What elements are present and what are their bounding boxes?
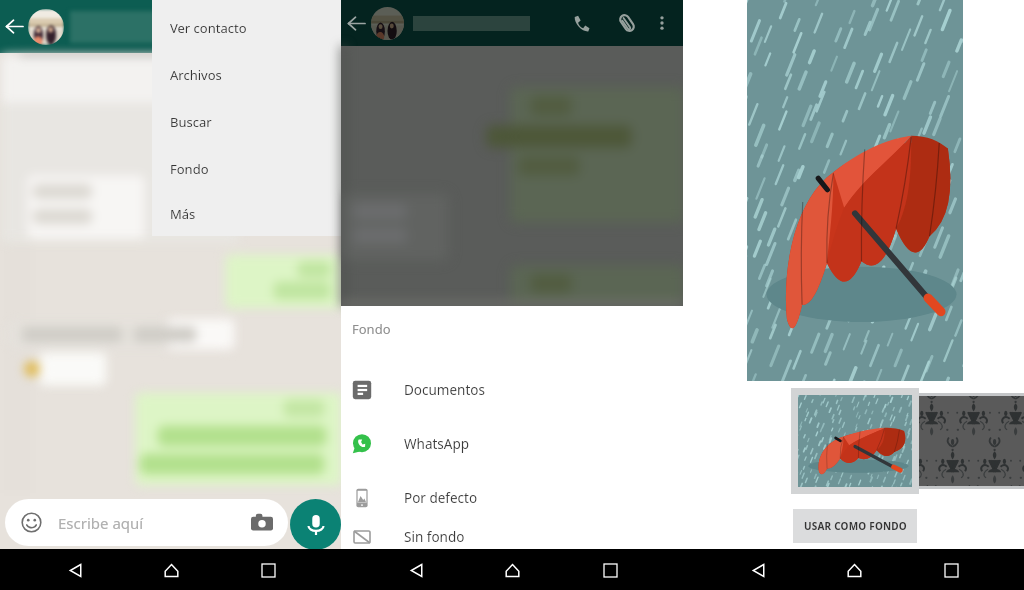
staticText: USAR COMO FONDO bbox=[804, 519, 907, 533]
button[interactable]: Fondo bbox=[152, 145, 341, 192]
button[interactable]: Back bbox=[400, 554, 432, 586]
button[interactable]: Wallpaper preview bbox=[747, 0, 963, 381]
button[interactable]: Más bbox=[152, 192, 341, 236]
staticText: Archivos bbox=[170, 66, 222, 84]
button[interactable]: Back bbox=[0, 0, 28, 53]
button[interactable]: Buscar bbox=[152, 98, 341, 145]
button[interactable]: Rain wallpaper bbox=[798, 395, 912, 487]
button[interactable]: Back bbox=[742, 554, 774, 586]
staticText: Fondo bbox=[170, 160, 209, 178]
button[interactable]: Recents bbox=[935, 554, 967, 586]
staticText: Sin fondo bbox=[404, 528, 465, 546]
button[interactable]: Voice call bbox=[563, 5, 599, 41]
button[interactable]: Record voice message bbox=[290, 499, 341, 550]
button[interactable]: Archivos bbox=[152, 51, 341, 98]
button[interactable]: Recents bbox=[252, 554, 284, 586]
staticText: Fondo bbox=[352, 320, 391, 338]
button[interactable]: Back bbox=[341, 0, 371, 46]
button[interactable]: More options bbox=[649, 10, 675, 36]
staticText: Buscar bbox=[170, 113, 212, 131]
button[interactable]: Attach bbox=[609, 5, 645, 41]
button[interactable]: USAR COMO FONDO bbox=[793, 509, 917, 543]
button[interactable]: Damask wallpaper bbox=[919, 396, 1024, 486]
button[interactable]: WhatsApp bbox=[341, 417, 683, 471]
staticText: Ver contacto bbox=[170, 19, 247, 37]
button[interactable]: Sin fondo bbox=[341, 525, 683, 549]
button[interactable]: Contact photo bbox=[28, 9, 64, 45]
button[interactable]: Recents bbox=[594, 554, 626, 586]
button[interactable]: Home bbox=[496, 554, 528, 586]
button[interactable]: Home bbox=[838, 554, 870, 586]
button[interactable]: Home bbox=[155, 554, 187, 586]
staticText: WhatsApp bbox=[404, 435, 470, 453]
button[interactable]: Por defecto bbox=[341, 471, 683, 525]
button[interactable]: Documentos bbox=[341, 363, 683, 417]
button[interactable]: Escribe aquí bbox=[5, 499, 288, 546]
button[interactable]: Back bbox=[59, 554, 91, 586]
staticText: Escribe aquí bbox=[58, 513, 144, 533]
staticText: Más bbox=[170, 205, 196, 223]
staticText: Por defecto bbox=[404, 489, 478, 507]
button[interactable]: Ver contacto bbox=[152, 4, 341, 51]
button[interactable]: Contact photo bbox=[371, 7, 404, 40]
staticText: Documentos bbox=[404, 381, 485, 399]
